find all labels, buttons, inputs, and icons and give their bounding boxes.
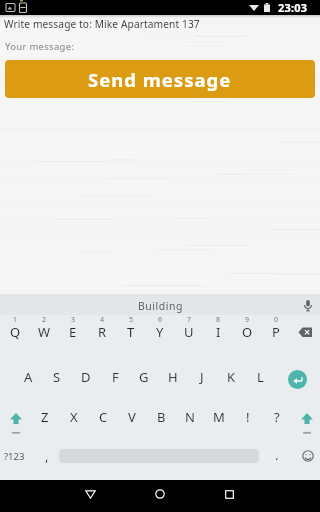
staticText: V [128,408,136,426]
button[interactable]: F [101,367,129,387]
button[interactable]: T [117,322,145,342]
staticText: A [24,368,33,386]
button[interactable]: 3 [59,310,87,330]
button[interactable]: 8 [204,310,232,330]
staticText: K [227,368,236,386]
staticText: W [38,323,51,341]
button[interactable]: H [159,367,187,387]
button[interactable]: P [262,322,290,342]
staticText: 0 [274,315,279,325]
button[interactable] [288,370,307,389]
staticText: D [81,368,91,386]
button[interactable]: O [233,322,261,342]
button[interactable]: , [33,446,61,466]
staticText: O [242,323,253,341]
button[interactable]: N [176,407,204,427]
button[interactable]: E [59,322,87,342]
staticText: R [98,323,107,341]
staticText: X [70,408,78,426]
button[interactable]: 5 [117,310,145,330]
button[interactable]: M [205,407,233,427]
staticText: J [200,368,204,386]
button[interactable] [298,327,313,338]
button[interactable] [85,490,96,499]
staticText: I [216,323,221,341]
staticText: 2 [42,315,47,325]
button[interactable]: C [89,407,117,427]
button[interactable]: G [130,367,158,387]
staticText: N [185,408,195,426]
button[interactable]: L [246,367,274,387]
button[interactable]: Q [1,322,29,342]
button[interactable] [9,412,23,435]
button[interactable]: 7 [175,310,203,330]
button[interactable]: 2 [30,310,58,330]
staticText: U [184,323,194,341]
staticText: ? [274,408,280,426]
button[interactable]: A [14,367,42,387]
staticText: Y [156,323,164,341]
button[interactable]: X [60,407,88,427]
staticText: , [45,447,49,465]
staticText: 7 [187,315,192,325]
button[interactable]: . [263,445,291,465]
button[interactable]: 6 [146,310,174,330]
button[interactable]: 1 [1,310,29,330]
staticText: 1 [13,315,18,325]
staticText: T [127,323,135,341]
button[interactable]: J [188,367,216,387]
button[interactable]: ! [234,407,262,427]
staticText: Your message: [5,40,75,53]
staticText: . [275,446,279,464]
staticText: 4 [100,315,105,325]
staticText: Z [41,408,49,426]
button[interactable] [300,412,314,435]
staticText: E [69,323,77,341]
button[interactable]: B [147,407,175,427]
staticText: Q [10,323,21,341]
staticText: L [257,368,264,386]
button[interactable] [302,450,314,462]
button[interactable]: 9 [233,310,261,330]
staticText: M [213,408,225,426]
button[interactable]: I [204,322,232,342]
staticText: 9 [245,315,250,325]
staticText: 3 [71,315,76,325]
button[interactable]: K [217,367,245,387]
staticText: 23:03 [278,0,308,15]
staticText: C [99,408,108,426]
button[interactable] [225,490,234,499]
button[interactable]: Send message [5,60,315,98]
button[interactable]: Building [138,299,183,313]
staticText: H [168,368,178,386]
staticText: ?123 [4,450,25,463]
button[interactable] [155,489,165,499]
button[interactable]: V [118,407,146,427]
button[interactable]: ?123 [0,446,28,466]
button[interactable]: Y [146,322,174,342]
staticText: 8 [216,315,221,325]
staticText: 5 [129,315,134,325]
staticText: B [157,408,166,426]
staticText: Write message to: Mike Apartament 137 [4,17,200,31]
button[interactable]: ? [263,407,291,427]
staticText: F [112,368,119,386]
staticText: P [272,323,280,341]
button[interactable]: 0 [262,310,290,330]
staticText: Send message [88,67,232,92]
staticText: 6 [158,315,163,325]
button[interactable]: W [30,322,58,342]
button[interactable]: 4 [88,310,116,330]
button[interactable]: S [43,367,71,387]
staticText: S [53,368,61,386]
button[interactable]: R [88,322,116,342]
staticText: G [139,368,149,386]
button[interactable]: D [72,367,100,387]
staticText: ! [246,408,250,426]
button[interactable]: Z [31,407,59,427]
button[interactable]: U [175,322,203,342]
